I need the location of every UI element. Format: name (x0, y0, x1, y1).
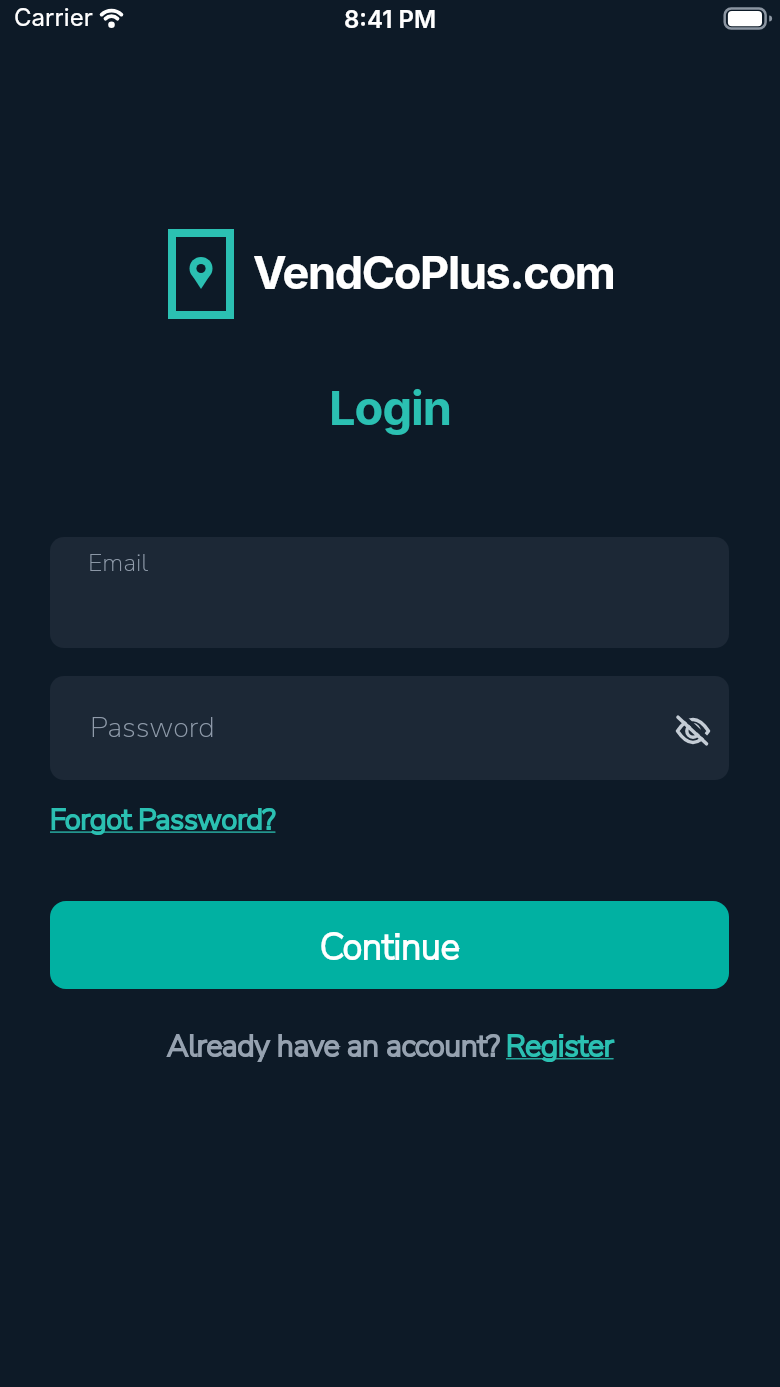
button[interactable]: Password (50, 676, 729, 780)
staticText: Continue (320, 923, 460, 972)
button[interactable]: Register (506, 1026, 614, 1067)
staticText: Register (506, 1026, 614, 1067)
staticText: 8:41 PM (344, 5, 437, 34)
staticText: Already have an account? (167, 1026, 500, 1067)
staticText: Carrier (14, 3, 93, 32)
staticText: Forgot Password? (50, 800, 276, 840)
staticText: Email (88, 546, 149, 580)
button[interactable] (673, 710, 713, 750)
staticText: Password (90, 708, 215, 748)
staticText: VendCoPlus.com (253, 245, 615, 299)
button[interactable]: Forgot Password? (50, 800, 276, 840)
staticText: Login (329, 379, 452, 436)
staticText: Continue (320, 923, 460, 972)
button[interactable]: Email (50, 537, 729, 648)
staticText: Register (506, 1026, 614, 1067)
staticText: Already have an account? (167, 1026, 500, 1067)
staticText: Forgot Password? (50, 800, 276, 840)
button[interactable]: Continue (50, 901, 729, 989)
